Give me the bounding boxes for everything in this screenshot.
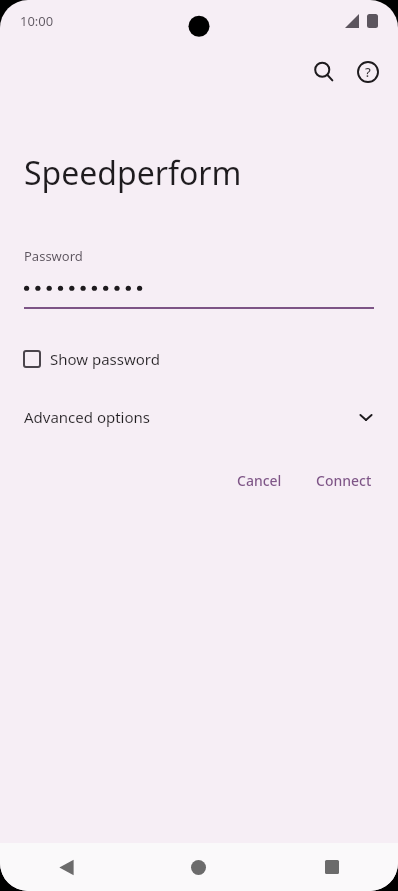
staticText: Advanced options [24,407,356,427]
button[interactable]: Help [346,50,390,94]
staticText: ? [365,63,371,81]
staticText: Show password [50,349,160,369]
button[interactable]: Search [302,50,346,94]
staticText: Password [24,247,83,265]
button[interactable]: Password [24,247,374,309]
button[interactable]: Advanced options [0,399,398,435]
staticText: Cancel [237,471,282,490]
button[interactable]: Recents [265,843,398,891]
button[interactable]: Home [132,843,265,891]
staticText: 10:00 [20,12,54,30]
staticText: Connect [316,471,372,490]
button[interactable]: Connect [304,463,384,498]
button[interactable]: Show password [20,343,378,375]
button[interactable]: Back [0,843,132,891]
button[interactable]: Cancel [225,463,294,498]
staticText: Speedperform [24,151,242,195]
